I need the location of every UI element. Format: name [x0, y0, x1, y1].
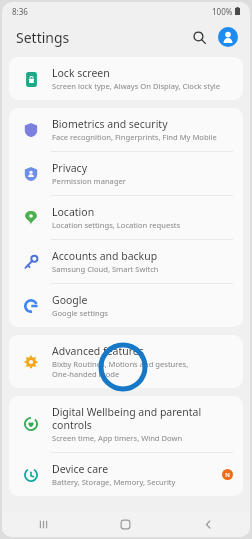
staticText: Digital Wellbeing and parental controls — [52, 405, 202, 432]
staticText: Google — [52, 293, 88, 307]
staticText: Screen time, App timers, Wind Down — [52, 433, 183, 443]
staticText: Screen lock type, Always On Display, Clo… — [52, 81, 221, 91]
staticText: Biometrics and security — [52, 117, 168, 131]
staticText: Device care — [52, 462, 109, 476]
staticText: Privacy — [52, 161, 88, 175]
button[interactable]: Device care — [9, 453, 243, 496]
staticText: Google settings — [52, 308, 108, 318]
staticText: Location settings, Location requests — [52, 220, 181, 230]
button[interactable]: Privacy — [9, 152, 243, 195]
button[interactable]: Biometrics and security — [9, 108, 243, 151]
button[interactable]: Accounts and backup — [9, 240, 243, 283]
staticText: Battery, Storage, Memory, Security — [52, 477, 176, 487]
button[interactable]: Account — [218, 27, 238, 47]
staticText: 8:36 — [12, 6, 28, 17]
staticText: Accounts and backup — [52, 249, 158, 263]
staticText: N — [225, 471, 230, 479]
button[interactable]: Advanced features — [9, 335, 243, 388]
staticText: Samsung Cloud, Smart Switch — [52, 264, 159, 274]
staticText: Face recognition, Fingerprints, Find My … — [52, 132, 217, 142]
staticText: 100% — [212, 6, 233, 17]
staticText: Lock screen — [52, 66, 110, 80]
staticText: Settings — [16, 28, 70, 47]
staticText: Location — [52, 205, 95, 219]
button[interactable]: Location — [9, 196, 243, 239]
button[interactable]: Lock screen — [9, 57, 243, 100]
button[interactable]: Back — [167, 511, 250, 537]
button[interactable]: Google — [9, 284, 243, 327]
button[interactable]: Digital Wellbeing and parental controls — [9, 396, 243, 452]
button[interactable]: Recent apps — [2, 511, 84, 537]
staticText: Permission manager — [52, 176, 126, 186]
button[interactable]: Search — [186, 24, 212, 50]
button[interactable]: Home — [84, 511, 167, 537]
staticText: Bixby Routines, Motions and gestures, On… — [52, 359, 189, 379]
staticText: Advanced features — [52, 344, 144, 358]
